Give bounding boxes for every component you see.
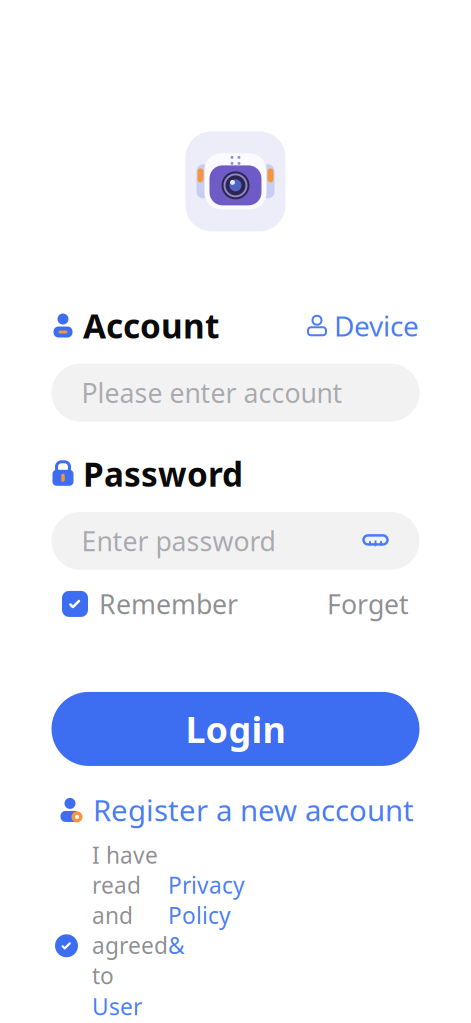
button[interactable]: Device: [307, 307, 419, 344]
staticText: Register a new account: [93, 790, 414, 829]
button[interactable]: Register a new account: [57, 788, 414, 832]
button[interactable]: Remember: [62, 586, 238, 622]
staticText: Please enter account: [81, 375, 342, 410]
button[interactable]: Show password: [361, 531, 389, 551]
staticText: Enter password: [81, 523, 275, 559]
staticText: Remember: [99, 586, 238, 622]
staticText: Account: [83, 303, 219, 348]
button[interactable]: Forget: [327, 586, 409, 622]
staticText: Privacy Policy &: [168, 870, 245, 960]
staticText: Password: [83, 452, 243, 496]
button[interactable]: Login: [51, 692, 419, 766]
staticText: I have read and agreed to: [92, 840, 168, 990]
staticText: Device: [334, 307, 419, 344]
staticText: Login: [185, 705, 285, 753]
staticText: User Agreement: [92, 991, 211, 1023]
button[interactable]: I have read and agreed to: [0, 840, 471, 1023]
staticText: Forget: [327, 586, 409, 622]
